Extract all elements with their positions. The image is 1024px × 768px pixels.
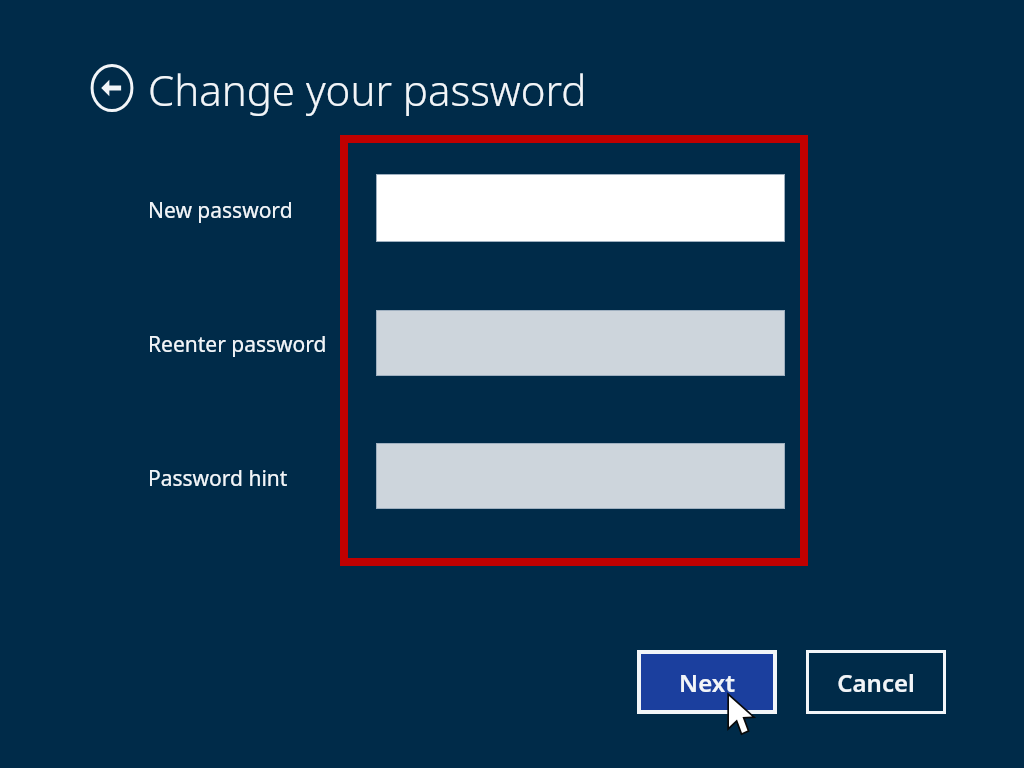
button[interactable]: Back	[88, 64, 136, 112]
staticText: Password hint	[148, 464, 288, 493]
button[interactable]: Cancel	[806, 650, 946, 714]
button[interactable]: New password field	[376, 174, 785, 242]
staticText: Next	[679, 666, 735, 699]
button[interactable]: Next	[641, 654, 773, 710]
staticText: Reenter password	[148, 330, 327, 359]
staticText: New password	[148, 196, 293, 225]
staticText: Cancel	[837, 666, 915, 699]
button[interactable]: Reenter password field	[376, 310, 785, 376]
staticText: Change your password	[148, 61, 587, 118]
button[interactable]: Password hint field	[376, 443, 785, 509]
